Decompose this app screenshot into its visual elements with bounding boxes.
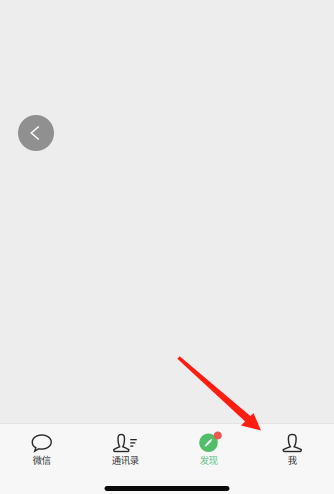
button[interactable]: 通讯录 xyxy=(83,424,167,472)
staticText: 通讯录 xyxy=(112,453,139,466)
staticText: 微信 xyxy=(33,453,51,466)
button[interactable]: Back xyxy=(18,115,54,151)
button[interactable]: 发现 xyxy=(167,424,250,472)
button[interactable]: 我 xyxy=(250,424,334,472)
staticText: 我 xyxy=(288,453,297,466)
button[interactable]: 微信 xyxy=(0,424,83,472)
staticText: 发现 xyxy=(200,453,218,466)
